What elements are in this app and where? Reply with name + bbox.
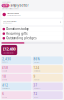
- staticText: Campaign manager: [7, 15, 21, 16]
- button[interactable]: 412: [1, 83, 31, 90]
- button[interactable]: 72: [32, 91, 63, 99]
- staticText: 86%: [33, 57, 39, 61]
- staticText: 2,430: [2, 57, 11, 61]
- button[interactable]: Your next campaign: [1, 19, 63, 25]
- button[interactable]: 18: [1, 74, 31, 82]
- staticText: Alexandra Reed: [7, 13, 19, 14]
- staticText: 412: [2, 84, 8, 87]
- staticText: Donations today: [6, 27, 28, 31]
- staticText: simply better: [10, 4, 28, 7]
- staticText: GIVE: [2, 4, 8, 7]
- button[interactable]: Outstanding pledges: [1, 36, 63, 41]
- staticText: Starts in 4 days: [2, 22, 12, 24]
- staticText: Events: [2, 79, 7, 81]
- button[interactable]: £12,480: [1, 45, 17, 55]
- button[interactable]: Alexandra Reed: [1, 11, 63, 18]
- staticText: Avg gift: [2, 70, 6, 72]
- staticText: 72: [33, 92, 37, 96]
- staticText: raised this month: [2, 52, 13, 54]
- staticText: Retention: [33, 61, 39, 63]
- staticText: Grants: [2, 96, 7, 98]
- staticText: 124: [33, 66, 39, 70]
- staticText: Volunteers: [2, 87, 10, 89]
- button[interactable]: Donations today: [1, 27, 63, 31]
- button[interactable]: 37: [32, 83, 63, 90]
- button[interactable]: £58: [1, 65, 31, 73]
- staticText: Stories: [33, 96, 38, 98]
- staticText: Donors: [2, 61, 8, 63]
- staticText: 9: [33, 75, 35, 78]
- staticText: 37: [33, 84, 37, 87]
- staticText: Partners: [33, 87, 40, 89]
- staticText: Raise more with less effort: [2, 8, 19, 10]
- button[interactable]: Recurring gifts: [1, 31, 63, 36]
- button[interactable]: 2,430: [1, 56, 31, 64]
- staticText: New this wk: [33, 70, 40, 72]
- button[interactable]: 124: [32, 65, 63, 73]
- button[interactable]: 6: [1, 91, 31, 99]
- staticText: £12,480: [2, 46, 15, 52]
- staticText: Outstanding pledges: [6, 36, 36, 40]
- button[interactable]: 86%: [32, 56, 63, 64]
- staticText: £58: [2, 66, 8, 70]
- staticText: Recurring gifts: [6, 32, 27, 35]
- button[interactable]: 9: [32, 74, 63, 82]
- staticText: Your next campaign: [2, 20, 16, 22]
- staticText: 6: [2, 92, 4, 96]
- staticText: Fundraising: [2, 1, 11, 3]
- staticText: Appeals: [33, 79, 39, 81]
- staticText: 18: [2, 75, 6, 78]
